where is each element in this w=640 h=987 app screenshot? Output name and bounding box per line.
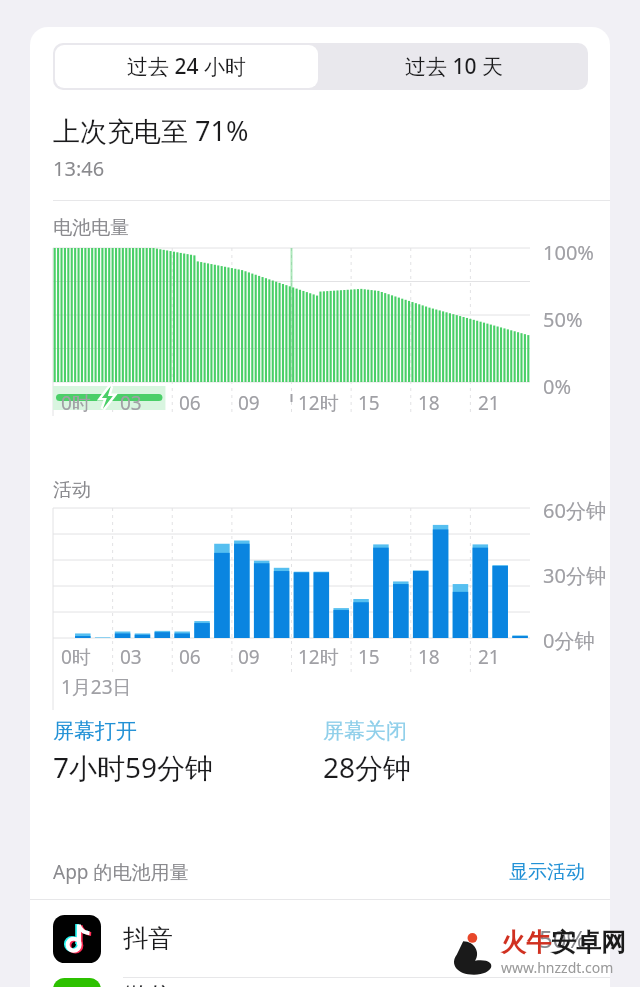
staticText: 电池电量	[53, 216, 129, 240]
button[interactable]: 抖音	[30, 900, 610, 977]
staticText: 21	[478, 390, 500, 416]
staticText: 0%	[543, 373, 572, 400]
staticText: 28分钟	[323, 748, 412, 786]
staticText: 100%	[543, 239, 594, 266]
staticText: 18	[418, 644, 440, 670]
staticText: 06	[179, 390, 201, 416]
staticText: 18	[418, 390, 440, 416]
staticText: 过去 24 小时	[127, 52, 246, 81]
staticText: 上次充电至 71%	[53, 112, 249, 149]
staticText: 屏幕打开	[53, 718, 137, 744]
staticText: 安卓网	[551, 927, 626, 958]
staticText: 50%	[539, 922, 587, 955]
staticText: 显示活动	[509, 860, 585, 884]
staticText: 1月23日	[61, 674, 132, 700]
staticText: 09	[238, 644, 260, 670]
staticText: 03	[120, 644, 142, 670]
staticText: 0时	[61, 644, 91, 670]
staticText: 09	[238, 390, 260, 416]
staticText: 50%	[543, 306, 583, 333]
button[interactable]: 微信	[30, 978, 610, 987]
staticText: www.hnzzdt.com	[501, 958, 614, 977]
staticText: 12时	[298, 390, 339, 416]
staticText: 微信	[123, 981, 173, 987]
staticText: App 的电池用量	[53, 859, 189, 885]
staticText: 过去 10 天	[405, 52, 503, 81]
staticText: 21	[478, 644, 500, 670]
staticText: 15	[358, 644, 380, 670]
staticText: 06	[179, 644, 201, 670]
staticText: 7小时59分钟	[53, 748, 214, 786]
button[interactable]: 显示活动	[507, 858, 587, 886]
staticText: 12时	[298, 644, 339, 670]
staticText: 60分钟	[543, 497, 606, 524]
staticText: 0分钟	[543, 627, 595, 654]
button[interactable]: 过去 10 天	[320, 43, 588, 90]
button[interactable]: 过去 24 小时	[55, 45, 318, 88]
staticText: 屏幕关闭	[323, 718, 407, 744]
staticText: 抖音	[123, 923, 173, 954]
staticText: 15	[358, 390, 380, 416]
staticText: 火牛	[501, 927, 551, 958]
staticText: 03	[120, 390, 142, 416]
staticText: 0时	[61, 390, 91, 416]
staticText: 13:46	[53, 155, 105, 182]
staticText: 30分钟	[543, 562, 606, 589]
staticText: 活动	[53, 478, 91, 502]
